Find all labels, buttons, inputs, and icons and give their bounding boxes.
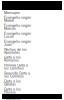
staticText: Carta a los Filipenses (4, 96, 21, 100)
staticText: Carta a los Romanos (4, 56, 21, 62)
staticText: Evangelio según Marcos (4, 24, 31, 30)
staticText: Evangelio según Mateo (4, 16, 31, 22)
staticText: Primera Carta a los Corintios (4, 64, 28, 70)
staticText: Mensajes (4, 11, 20, 14)
staticText: Segunda Carta a los Corintios (4, 72, 30, 78)
staticText: Carta a los Gálatas (4, 80, 21, 86)
staticText: Hechos de los Apóstoles (4, 48, 27, 54)
staticText: Evangelio según Lucas (4, 32, 31, 38)
staticText: Evangelio según Juan (4, 40, 31, 46)
staticText: Carta a los Efesios (4, 88, 21, 94)
